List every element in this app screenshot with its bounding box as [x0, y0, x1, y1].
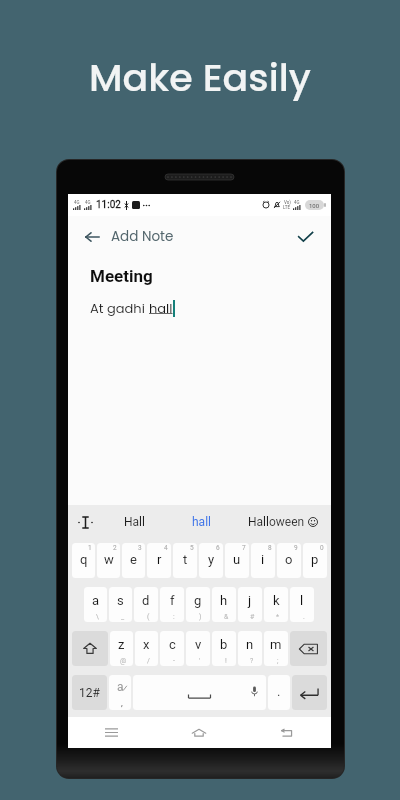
staticText: u	[233, 552, 241, 567]
button[interactable]: Change language	[109, 675, 131, 710]
staticText: r	[157, 552, 162, 567]
staticText: l	[300, 593, 304, 608]
button[interactable]: g	[186, 587, 210, 622]
staticText: d	[142, 593, 150, 608]
button[interactable]: Backspace	[290, 631, 327, 666]
button[interactable]: Text cursor tools	[68, 505, 102, 539]
button[interactable]: r	[147, 543, 171, 578]
button[interactable]: o	[277, 543, 301, 578]
staticText: 2	[113, 544, 117, 552]
button[interactable]: l	[290, 587, 314, 622]
staticText: y	[208, 552, 215, 567]
staticText: a	[92, 593, 100, 608]
staticText: 8	[268, 544, 272, 552]
staticText: ?	[250, 657, 254, 665]
staticText: 7	[242, 544, 246, 552]
button[interactable]: Hall	[102, 505, 167, 539]
staticText: h	[220, 593, 228, 608]
staticText: q	[80, 552, 88, 567]
staticText: .	[277, 684, 281, 699]
button[interactable]: Space	[133, 675, 266, 710]
staticText: At gadhi	[90, 299, 149, 317]
button[interactable]: .	[268, 675, 290, 710]
staticText: 3	[138, 544, 142, 552]
staticText: @	[120, 657, 127, 665]
staticText: Halloween	[248, 515, 305, 529]
staticText: ,	[121, 698, 123, 709]
button[interactable]: t	[173, 543, 197, 578]
button[interactable]: p	[303, 543, 327, 578]
staticText: 11:02	[96, 199, 121, 211]
button[interactable]: Symbols	[72, 675, 107, 710]
staticText: \	[96, 613, 99, 621]
button[interactable]: v	[186, 631, 210, 666]
button[interactable]: Back	[79, 224, 105, 250]
staticText: i	[261, 552, 265, 567]
button[interactable]: c	[160, 631, 184, 666]
button[interactable]: a	[84, 587, 107, 622]
staticText: j	[248, 593, 252, 608]
staticText: hall	[192, 515, 211, 529]
button[interactable]: Back	[243, 717, 331, 748]
button[interactable]: j	[238, 587, 262, 622]
staticText: m	[270, 637, 282, 652]
staticText: n	[246, 637, 254, 652]
staticText: s	[117, 593, 124, 608]
staticText: f	[170, 593, 175, 608]
staticText: :	[173, 613, 175, 621]
staticText: 9	[294, 544, 298, 552]
button[interactable]: w	[97, 543, 120, 578]
button[interactable]: Halloween	[235, 505, 331, 539]
button[interactable]: m	[264, 631, 288, 666]
button[interactable]: k	[264, 587, 288, 622]
staticText: &	[224, 613, 229, 621]
staticText: 4	[164, 544, 168, 552]
staticText: 5	[190, 544, 194, 552]
staticText: _	[121, 613, 125, 621]
button[interactable]: Home	[155, 717, 243, 748]
button[interactable]: Enter	[292, 675, 327, 710]
button[interactable]: h	[212, 587, 236, 622]
button[interactable]: Shift	[72, 631, 108, 666]
button[interactable]: y	[199, 543, 223, 578]
staticText: 4G	[294, 200, 300, 205]
staticText: *	[276, 613, 280, 621]
button[interactable]: u	[225, 543, 249, 578]
staticText: )	[199, 613, 202, 621]
button[interactable]: n	[238, 631, 262, 666]
staticText: 12#	[79, 686, 100, 700]
staticText: Meeting	[90, 266, 153, 286]
staticText: Hall	[124, 515, 145, 529]
button[interactable]: i	[251, 543, 275, 578]
button[interactable]: e	[122, 543, 145, 578]
staticText: p	[311, 552, 319, 567]
button[interactable]: Save note	[292, 224, 318, 250]
staticText: (	[147, 613, 150, 621]
staticText: Vo)	[284, 200, 291, 205]
staticText: k	[273, 593, 280, 608]
staticText: t	[183, 552, 188, 567]
button[interactable]: f	[160, 587, 184, 622]
staticText: v	[195, 637, 202, 652]
staticText: c	[169, 637, 176, 652]
button[interactable]: hall	[167, 505, 235, 539]
button[interactable]: x	[135, 631, 158, 666]
button[interactable]: Recents	[68, 717, 155, 748]
button[interactable]: z	[110, 631, 133, 666]
staticText: x	[143, 637, 150, 652]
staticText: 1	[88, 544, 92, 552]
staticText: hall	[149, 299, 173, 317]
staticText: -	[173, 657, 175, 665]
staticText: g	[194, 593, 202, 608]
staticText: 100	[309, 202, 320, 209]
button[interactable]: b	[212, 631, 236, 666]
staticText: b	[220, 637, 228, 652]
button[interactable]: q	[72, 543, 95, 578]
staticText: 4G	[74, 200, 80, 205]
button[interactable]: d	[134, 587, 158, 622]
staticText: a	[117, 680, 124, 694]
staticText: Add Note	[111, 227, 174, 246]
button[interactable]: s	[109, 587, 132, 622]
staticText: '	[199, 657, 201, 665]
staticText: 6	[216, 544, 220, 552]
